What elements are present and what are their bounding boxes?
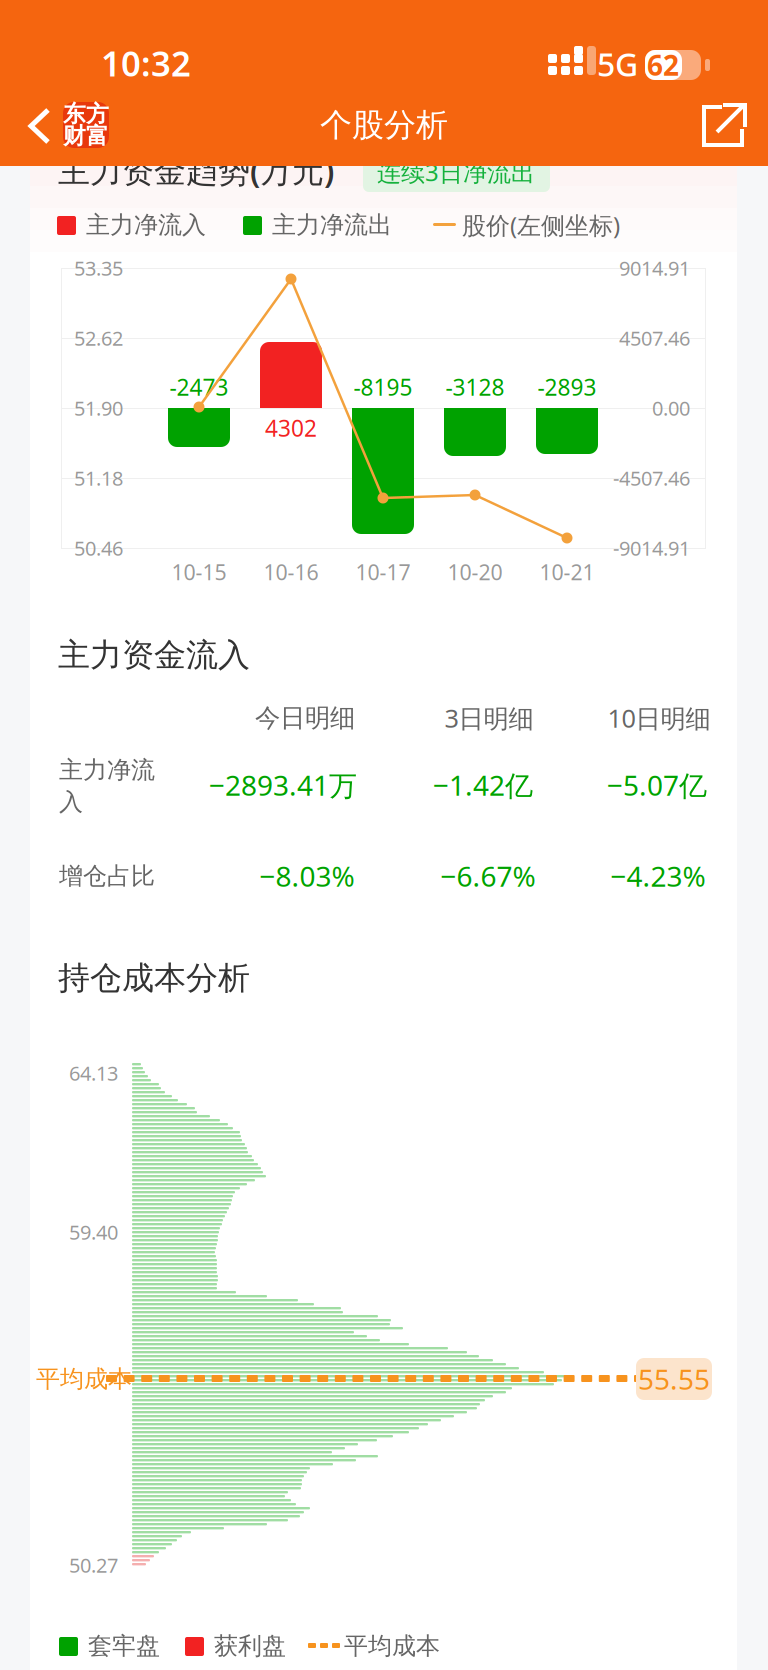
- staticText: 0.00: [652, 395, 690, 421]
- staticText: −8.03%: [259, 857, 354, 895]
- staticText: 51.18: [74, 465, 123, 491]
- staticText: 套牢盘: [88, 1631, 160, 1661]
- staticText: −1.42亿: [433, 766, 533, 804]
- staticText: 10-21: [539, 558, 594, 586]
- staticText: 东方: [63, 100, 109, 128]
- staticText: 50.46: [74, 535, 123, 561]
- staticText: 5G: [597, 43, 638, 85]
- staticText: 今日明细: [255, 702, 355, 733]
- staticText: -4507.46: [613, 465, 690, 491]
- staticText: −4.23%: [610, 857, 705, 895]
- staticText: −6.67%: [440, 857, 535, 895]
- staticText: 51.90: [74, 395, 123, 421]
- staticText: 10日明细: [607, 701, 710, 735]
- staticText: -9014.91: [613, 535, 690, 561]
- staticText: 入: [59, 787, 83, 817]
- staticText: 64.13: [69, 1060, 118, 1086]
- staticText: 62: [647, 46, 679, 84]
- button[interactable]: 分享: [685, 93, 763, 155]
- staticText: 4302: [265, 413, 317, 443]
- staticText: 52.62: [74, 325, 123, 351]
- staticText: 主力资金趋势(万元): [58, 149, 334, 191]
- staticText: 主力资金流入: [58, 635, 250, 675]
- staticText: 主力净流: [59, 755, 155, 785]
- staticText: 获利盘: [214, 1631, 286, 1661]
- staticText: 10:32: [101, 40, 191, 86]
- staticText: -2893: [537, 372, 596, 402]
- staticText: 主力净流出: [272, 210, 392, 240]
- staticText: 10-15: [171, 558, 226, 586]
- staticText: 个股分析: [320, 105, 448, 145]
- staticText: 增仓占比: [59, 861, 155, 891]
- staticText: 连续3日净流出: [377, 156, 535, 188]
- staticText: 主力净流入: [86, 210, 206, 240]
- staticText: 59.40: [69, 1219, 118, 1245]
- staticText: 55.55: [638, 1360, 710, 1398]
- button[interactable]: 返回: [1, 93, 131, 155]
- staticText: 平均成本: [344, 1631, 440, 1661]
- staticText: −5.07亿: [607, 766, 707, 804]
- staticText: 4507.46: [619, 325, 690, 351]
- staticText: -3128: [445, 372, 504, 402]
- staticText: 财富: [63, 122, 109, 150]
- staticText: 股价(左侧坐标): [462, 209, 620, 241]
- staticText: −2893.41万: [209, 766, 357, 804]
- staticText: 9014.91: [619, 255, 690, 281]
- staticText: 53.35: [74, 255, 123, 281]
- staticText: 10-20: [447, 558, 502, 586]
- staticText: 3日明细: [444, 701, 533, 735]
- staticText: 10-17: [355, 558, 410, 586]
- staticText: -2473: [169, 372, 228, 402]
- staticText: 平均成本: [36, 1364, 132, 1394]
- staticText: -8195: [353, 372, 412, 402]
- staticText: 10-16: [263, 558, 318, 586]
- staticText: 50.27: [69, 1552, 118, 1578]
- staticText: 持仓成本分析: [58, 958, 250, 998]
